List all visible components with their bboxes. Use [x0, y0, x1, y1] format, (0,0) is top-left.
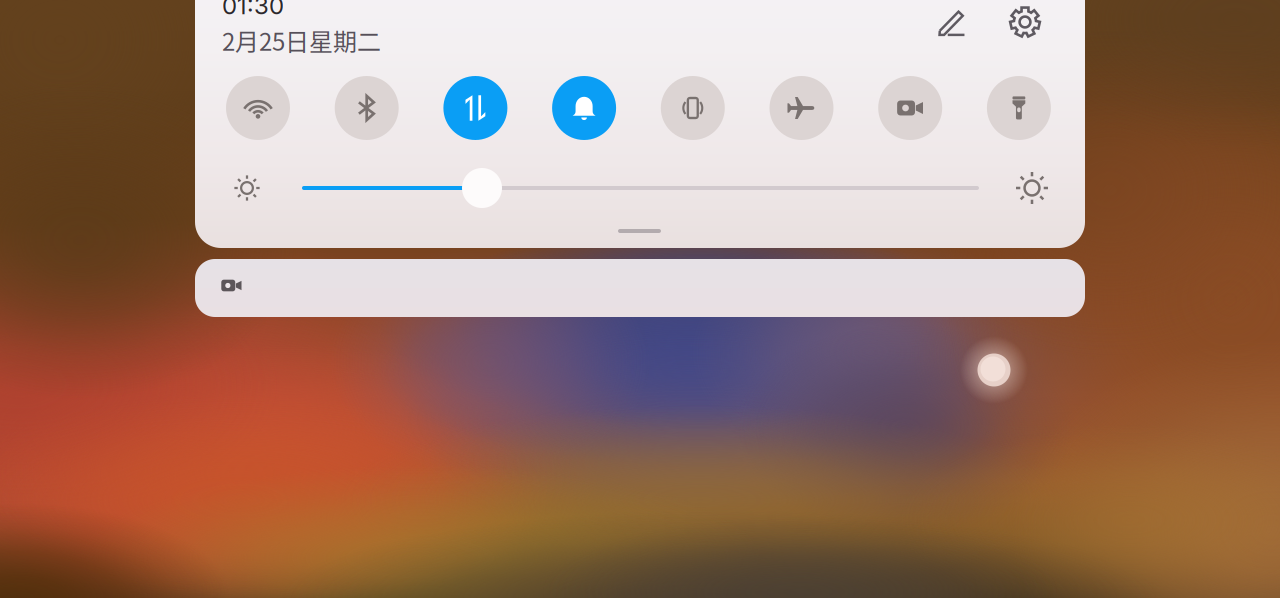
button[interactable]: Torch — [987, 76, 1051, 140]
button[interactable]: Edit — [928, 0, 976, 46]
button[interactable]: Mobile data — [443, 76, 507, 140]
button[interactable]: Bluetooth — [335, 76, 399, 140]
button[interactable]: Settings — [1001, 0, 1049, 46]
button[interactable]: Vibrate — [661, 76, 725, 140]
staticText: 2月25日星期二 — [222, 23, 381, 58]
button[interactable]: Aeroplane mode — [769, 76, 833, 140]
button[interactable]: Wi‑Fi — [226, 76, 290, 140]
button[interactable]: Screen recording notification — [195, 259, 1085, 317]
staticText: 01:30 — [222, 0, 284, 20]
button[interactable]: Ring — [552, 76, 616, 140]
button[interactable]: Brightness — [462, 168, 502, 208]
button[interactable]: Screen record — [878, 76, 942, 140]
